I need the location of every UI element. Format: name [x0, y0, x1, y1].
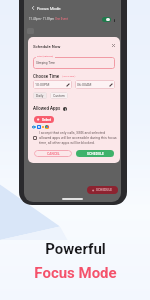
staticText: Choose Time — [33, 74, 60, 79]
staticText: Focus Mode — [34, 264, 117, 282]
button[interactable]: More options — [110, 16, 118, 24]
staticText: ( 8 hr 0 min ) — [62, 75, 76, 78]
staticText: 11.45pm - 11.59pm — [29, 17, 55, 20]
staticText: SCHEDULE — [96, 188, 113, 192]
button[interactable]: Close — [110, 42, 117, 49]
button[interactable]: + — [34, 116, 54, 123]
staticText: One Event — [55, 17, 68, 20]
staticText: + — [92, 188, 95, 193]
staticText: 06:00AM — [77, 83, 92, 87]
button[interactable]: Daily — [33, 92, 47, 99]
button[interactable]: Custom — [50, 92, 68, 99]
staticText: CANCEL — [47, 152, 60, 156]
button[interactable]: SCHEDULE — [76, 150, 114, 157]
button[interactable]: 06:00AM — [75, 80, 115, 89]
staticText: Schedule Now — [33, 44, 61, 49]
staticText: i — [65, 108, 66, 111]
button[interactable]: Accept terms — [33, 136, 37, 140]
staticText: Sleeping Time — [36, 61, 55, 65]
staticText: Select — [42, 118, 51, 122]
button[interactable]: Sleeping Time — [33, 57, 115, 69]
staticText: Custom — [53, 94, 65, 98]
staticText: Allowed Apps — [33, 106, 61, 111]
staticText: + — [37, 117, 40, 122]
button[interactable]: 10:00PM — [33, 80, 72, 89]
button[interactable]: Back — [28, 3, 37, 12]
staticText: n — [38, 125, 40, 129]
staticText: Powerful — [45, 240, 106, 258]
staticText: 10:00PM — [35, 83, 50, 87]
button[interactable]: Toggle focus mode — [102, 17, 111, 22]
staticText: I accept that only calls, SMS and select… — [39, 131, 117, 144]
staticText: SCHEDULE — [87, 152, 104, 156]
staticText: Title (optional) — [37, 55, 54, 58]
staticText: Focus Mode — [37, 6, 61, 11]
button[interactable]: CANCEL — [34, 150, 72, 157]
staticText: Daily — [36, 94, 44, 98]
button[interactable]: + — [87, 186, 118, 194]
